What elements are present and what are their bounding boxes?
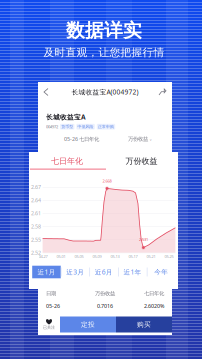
button[interactable]: 已关注 <box>38 314 60 335</box>
staticText: 万份收益 <box>125 156 157 166</box>
staticText: 近3月 <box>66 268 84 276</box>
staticText: 2.52 <box>31 249 41 256</box>
button[interactable]: 七日年化 <box>29 153 105 169</box>
button[interactable]: Share <box>155 85 170 99</box>
button[interactable]: 近6月 <box>89 266 118 278</box>
staticText: 近1年 <box>123 268 141 276</box>
staticText: 2.58 <box>31 223 41 230</box>
staticText: 货币型 <box>61 124 73 129</box>
staticText: 今年 <box>154 268 168 276</box>
staticText: 七日年化 <box>144 290 164 297</box>
staticText: ⌄ <box>148 137 152 141</box>
staticText: 日期 <box>46 290 56 297</box>
button[interactable]: 近1月 <box>32 266 61 278</box>
staticText: 05-26 <box>46 302 60 310</box>
staticText: 近1月 <box>37 268 55 276</box>
staticText: 购买 <box>137 320 151 329</box>
button[interactable]: Back <box>40 84 52 99</box>
button[interactable]: 近1年 <box>118 266 147 278</box>
staticText: 近6月 <box>95 268 113 276</box>
staticText: 05-26 七日年化 <box>64 135 99 143</box>
button[interactable]: 今年 <box>147 266 175 278</box>
staticText: 万份收益 <box>128 136 148 142</box>
staticText: 004972 <box>46 124 58 129</box>
staticText: 04-27 <box>38 254 47 259</box>
staticText: 2.61 <box>31 210 41 217</box>
staticText: 已关注 <box>43 325 55 330</box>
staticText: 正常申购 <box>98 124 114 129</box>
staticText: 05-21 <box>146 254 155 259</box>
staticText: 2.6020% <box>144 302 164 310</box>
staticText: 05-25 <box>164 254 173 259</box>
staticText: 及时直观，让您把握行情 <box>43 46 164 59</box>
staticText: 05-17 <box>128 254 137 259</box>
staticText: 定投 <box>81 320 95 329</box>
button[interactable]: 万份收益 <box>105 153 178 169</box>
staticText: 05-05 <box>74 254 83 259</box>
button[interactable]: 定投 <box>60 316 116 332</box>
staticText: 2.55 <box>31 236 41 243</box>
button[interactable]: 近3月 <box>61 266 90 278</box>
staticText: 2.668 <box>102 178 111 184</box>
staticText: 05-09 <box>92 254 101 259</box>
staticText: 数据详实 <box>66 19 142 42</box>
staticText: 长城收益宝A(004972) <box>71 88 138 96</box>
staticText: 05-01 <box>56 254 65 259</box>
staticText: 七日年化 <box>51 156 83 166</box>
staticText: 05-13 <box>110 254 119 259</box>
staticText: 0.7016 <box>97 302 113 310</box>
button[interactable]: 购买 <box>116 316 172 332</box>
staticText: 万份收益 <box>95 290 115 297</box>
staticText: 2.531 <box>139 237 148 242</box>
staticText: 2.67 <box>31 183 41 191</box>
staticText: 2.64 <box>31 197 41 204</box>
staticText: 中低风险 <box>78 124 94 129</box>
staticText: 长城收益宝A <box>46 112 86 121</box>
